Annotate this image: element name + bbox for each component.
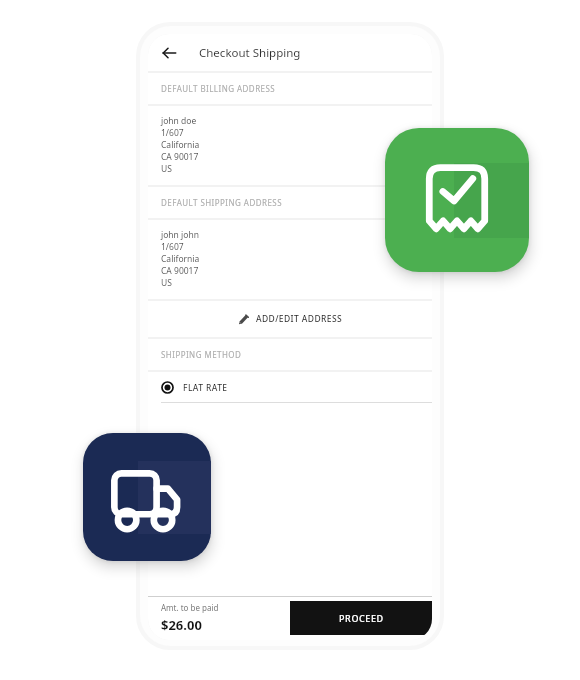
staticText: Amt. to be paid <box>161 602 219 613</box>
staticText: 1/607 <box>161 127 184 139</box>
staticText: john doe <box>161 115 197 127</box>
staticText: SHIPPING METHOD <box>161 349 242 360</box>
button[interactable]: FLAT RATE <box>148 372 432 403</box>
staticText: 1/607 <box>161 241 184 253</box>
button[interactable]: PROCEED <box>290 601 432 635</box>
staticText: California <box>161 139 200 151</box>
staticText: California <box>161 253 200 265</box>
staticText: PROCEED <box>339 612 384 624</box>
button[interactable]: Back <box>154 38 184 68</box>
staticText: ADD/EDIT ADDRESS <box>256 313 343 325</box>
staticText: CA 90017 <box>161 151 199 163</box>
staticText: DEFAULT SHIPPING ADDRESS <box>161 197 283 208</box>
staticText: CA 90017 <box>161 265 199 277</box>
button[interactable]: ADD/EDIT ADDRESS <box>148 301 432 337</box>
staticText: $26.00 <box>161 616 202 634</box>
staticText: US <box>161 277 172 289</box>
staticText: FLAT RATE <box>183 382 228 394</box>
staticText: Checkout Shipping <box>199 45 301 61</box>
staticText: US <box>161 163 172 175</box>
staticText: DEFAULT BILLING ADDRESS <box>161 83 276 94</box>
staticText: john john <box>161 229 199 241</box>
